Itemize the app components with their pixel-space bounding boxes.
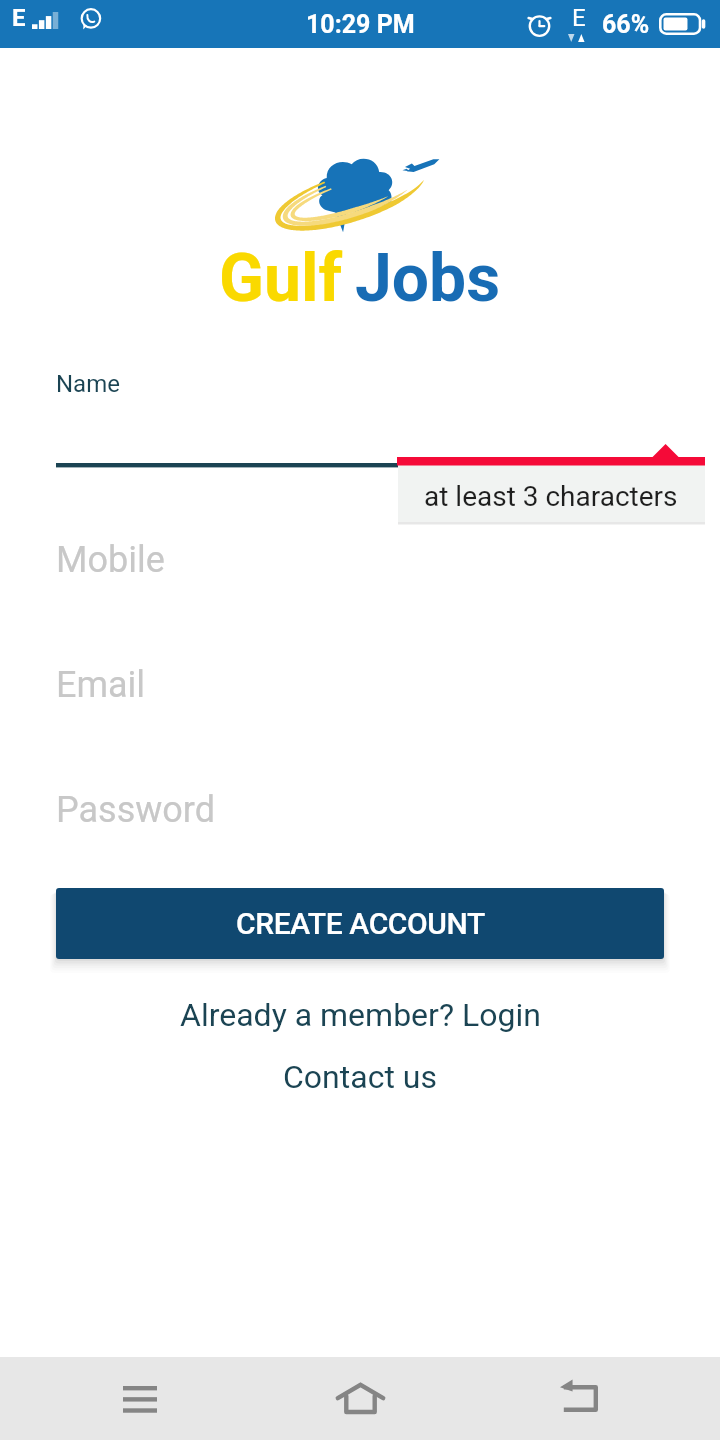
staticText: E — [12, 4, 26, 32]
staticText: 10:29 PM — [306, 10, 415, 39]
button[interactable]: Home — [290, 1357, 430, 1440]
staticText: Gulf — [219, 240, 343, 317]
staticText: Mobile — [56, 539, 165, 581]
staticText: CREATE ACCOUNT — [236, 906, 485, 941]
button[interactable]: Contact us — [0, 1046, 720, 1108]
staticText: at least 3 characters — [424, 480, 678, 513]
staticText: E — [572, 4, 586, 32]
button[interactable]: Already a member? Login — [0, 984, 720, 1046]
staticText: Jobs — [355, 240, 501, 317]
staticText: Contact us — [283, 1058, 437, 1096]
staticText: Name — [56, 370, 120, 398]
staticText: Email — [56, 664, 146, 706]
staticText: Password — [56, 789, 216, 831]
staticText: 66% — [602, 10, 650, 39]
button[interactable]: CREATE ACCOUNT — [56, 888, 664, 959]
button[interactable]: Recent apps — [80, 1357, 200, 1440]
button[interactable]: Back — [519, 1357, 639, 1440]
staticText: Already a member? Login — [180, 996, 541, 1034]
